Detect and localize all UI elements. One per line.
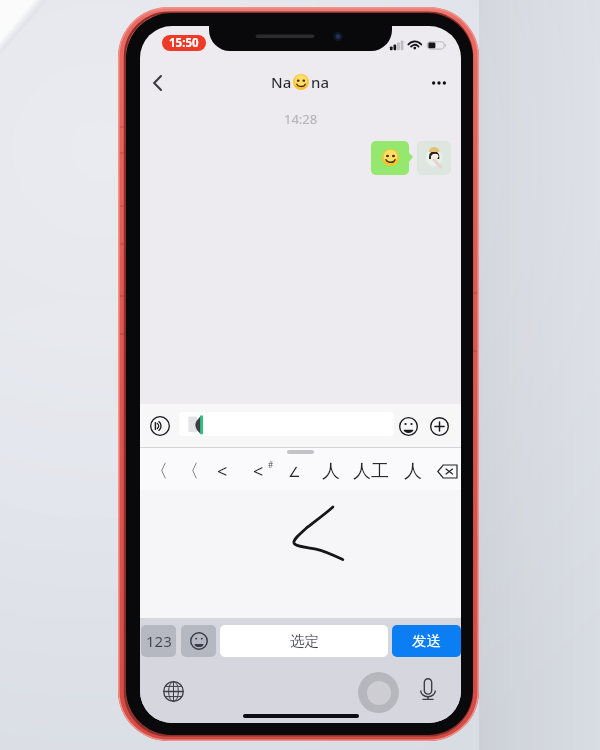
staticText: 〈 [181,460,199,483]
button[interactable]: Avatar [417,141,451,175]
button[interactable]: 选定 [220,625,388,657]
button[interactable]: 〈 [143,453,174,490]
button[interactable]: Assistive touch [358,672,399,713]
button[interactable]: More functions [428,415,450,437]
button[interactable]: 人工 [349,453,393,490]
staticText: 人 [322,460,340,483]
staticText: # [268,459,274,470]
button[interactable]: Message input field [179,412,394,436]
button[interactable]: Sticker message [371,141,409,175]
button[interactable]: Backspace [433,453,461,490]
button[interactable]: ∠ [276,453,313,490]
staticText: 15:50 [169,35,199,51]
button[interactable]: 人 [393,453,433,490]
staticText: 选定 [290,632,319,650]
staticText: 人 [404,460,422,483]
button[interactable]: < [240,453,276,490]
button[interactable]: 人 [313,453,349,490]
button[interactable]: Dictation [415,676,440,701]
button[interactable]: Emoji [397,415,419,437]
button[interactable]: Back [142,63,173,103]
button[interactable]: < [205,453,240,490]
staticText: 〈 [150,460,168,483]
staticText: 14:28 [284,110,318,128]
staticText: ∠ [288,464,301,480]
staticText: 人工 [353,460,389,483]
staticText: na [311,72,329,92]
staticText: < [253,459,264,484]
button[interactable]: 123 [141,625,176,657]
staticText: < [217,459,228,484]
button[interactable]: Emoji keyboard [181,625,216,657]
staticText: Na [271,72,292,92]
staticText: 123 [146,631,172,651]
button[interactable]: 15:50 [162,35,206,51]
button[interactable]: 发送 [392,625,461,657]
button[interactable]: Switch keyboard [161,679,186,704]
button[interactable]: Voice input [149,415,171,437]
staticText: 发送 [412,632,441,650]
button[interactable]: More options [421,63,457,103]
button[interactable]: 〈 [174,453,205,490]
